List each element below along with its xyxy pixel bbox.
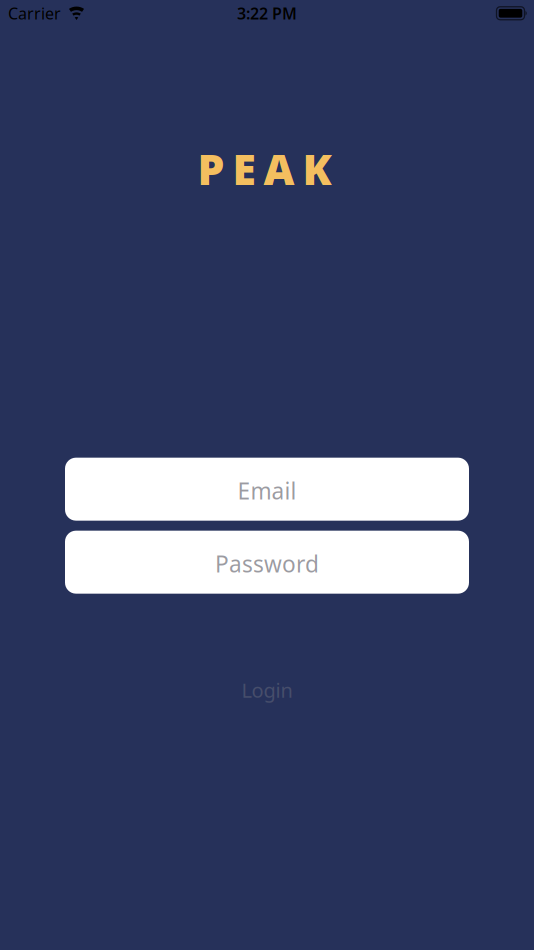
staticText: Email — [237, 476, 296, 506]
staticText: Password — [215, 549, 319, 579]
staticText: Carrier — [8, 3, 61, 24]
staticText: 3:22 PM — [237, 3, 297, 24]
staticText: Login — [241, 677, 292, 703]
staticText: PEAK — [197, 140, 331, 197]
button[interactable]: Login — [241, 677, 292, 703]
button[interactable]: Password — [65, 531, 469, 594]
button[interactable]: Email — [65, 458, 469, 521]
